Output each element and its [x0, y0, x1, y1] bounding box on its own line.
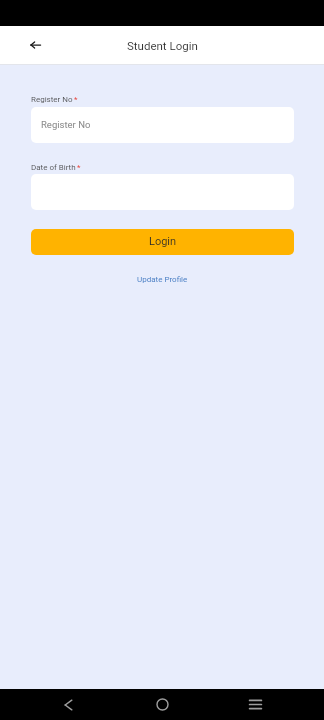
button[interactable]: Update Profile	[129, 271, 196, 288]
staticText: *	[74, 95, 78, 104]
staticText: Update Profile	[137, 275, 188, 284]
button[interactable]: Register No	[31, 107, 294, 143]
staticText: Register No	[31, 95, 73, 104]
staticText: Login	[149, 235, 177, 248]
staticText: Student Login	[127, 39, 198, 52]
button[interactable]: Login	[31, 229, 294, 255]
button[interactable]: Recent apps	[234, 689, 276, 720]
staticText: Register No	[41, 119, 91, 130]
staticText: *	[77, 163, 81, 172]
button[interactable]: Navigate up	[21, 31, 49, 59]
button[interactable]: Back	[47, 689, 89, 720]
staticText: Date of Birth	[31, 163, 76, 172]
button[interactable]: Home	[141, 689, 183, 720]
